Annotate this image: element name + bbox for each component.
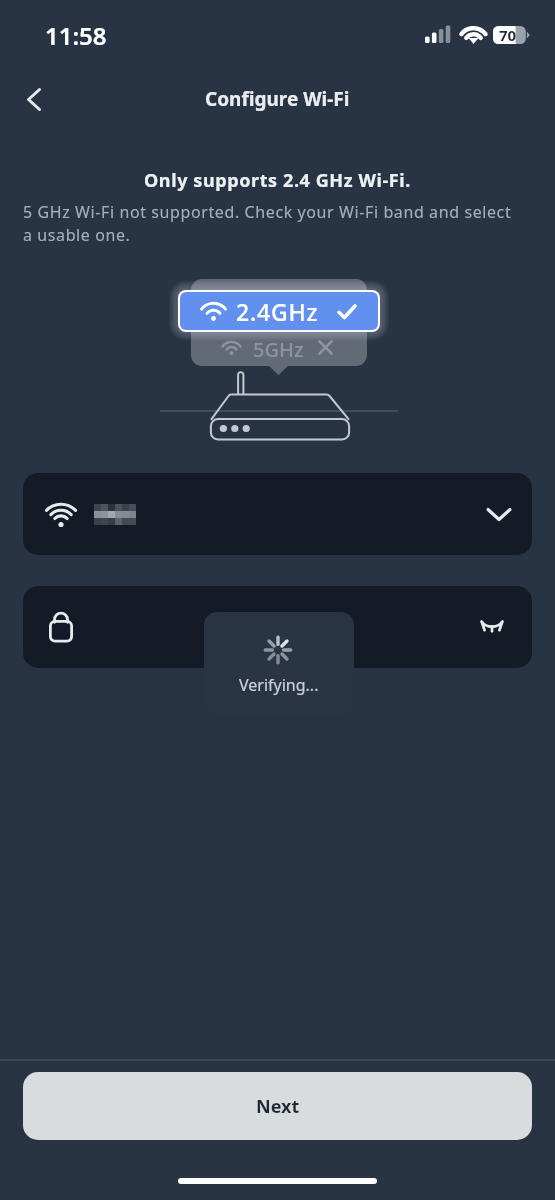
staticText: Configure Wi-Fi — [205, 86, 350, 112]
staticText: 11:58 — [45, 19, 107, 52]
staticText: Next — [256, 1094, 300, 1119]
button[interactable]: Back — [14, 79, 54, 119]
button[interactable]: Next — [23, 1072, 532, 1140]
staticText: Verifying... — [239, 674, 319, 696]
staticText: 5GHz — [253, 336, 304, 358]
staticText: Only supports 2.4 GHz Wi-Fi. — [0, 168, 555, 193]
button[interactable]: Show password — [470, 605, 514, 649]
staticText: 2.4GHz — [236, 296, 319, 327]
button[interactable]: 2.4GHz — [180, 292, 378, 330]
button[interactable]: Show password — [23, 586, 532, 668]
button[interactable] — [23, 473, 532, 555]
staticText: 70 — [499, 25, 517, 45]
staticText: 5 GHz Wi-Fi not supported. Check your Wi… — [23, 201, 535, 246]
